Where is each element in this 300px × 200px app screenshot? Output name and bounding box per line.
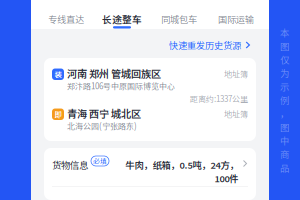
staticText: 必填 [93, 156, 107, 166]
button[interactable]: 货物信息 [44, 148, 256, 200]
staticText: 同城包车 [161, 12, 197, 26]
staticText: 快速重发历史货源 [169, 38, 241, 52]
button[interactable]: 专线直达 [38, 0, 94, 29]
staticText: 河南 郑州 管城回族区 [67, 66, 161, 81]
staticText: 装 [54, 69, 61, 80]
button[interactable]: 快速重发历史货源 [169, 38, 250, 52]
staticText: 青海 西宁 城北区 [67, 106, 141, 121]
button[interactable]: 国际运输 [208, 0, 264, 29]
staticText: 地址簿 [224, 68, 248, 80]
staticText: 专线直达 [48, 12, 84, 26]
button[interactable]: 同城包车 [151, 0, 207, 29]
staticText: 国际运输 [218, 12, 254, 26]
staticText: 郑汴路106号中原国际博览中心 [67, 80, 175, 92]
staticText: 长途整车 [102, 12, 142, 26]
staticText: 即 [54, 109, 61, 120]
button[interactable]: 长途整车 [94, 0, 150, 29]
staticText: 北海公园(宁张路东) [67, 120, 137, 132]
staticText: 地址簿 [224, 108, 248, 120]
staticText: 牛肉，纸箱，0.5吨，24方，100件 [125, 158, 238, 185]
staticText: 本图仅为示例，图中商品 [280, 26, 289, 174]
button[interactable]: 即 [44, 106, 256, 132]
staticText: 距离约:1337公里 [190, 93, 248, 104]
button[interactable]: 装 [44, 66, 256, 92]
staticText: 货物信息 [52, 158, 88, 171]
